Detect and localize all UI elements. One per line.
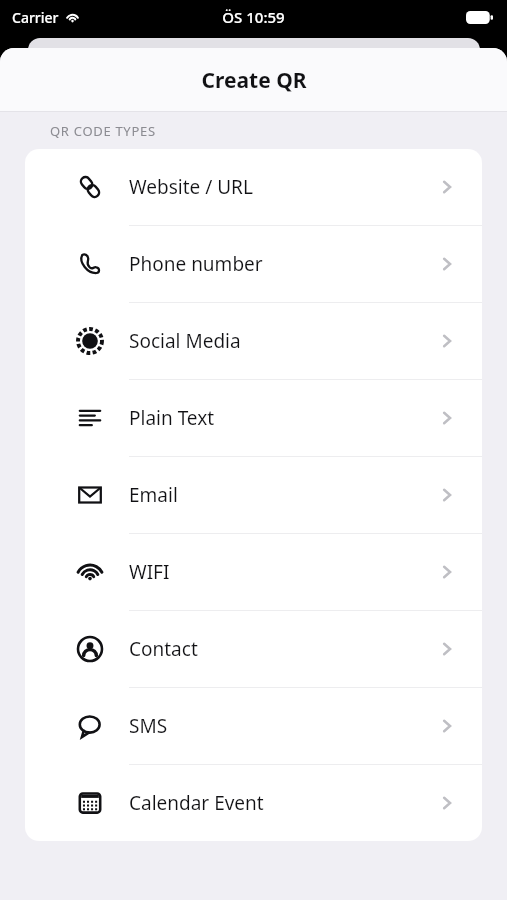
staticText: ÖS 10:59 [222, 7, 285, 27]
staticText: WIFI [129, 559, 438, 585]
button[interactable]: Contact [25, 611, 482, 687]
button[interactable]: SMS [25, 688, 482, 764]
staticText: Contact [129, 636, 438, 662]
staticText: SMS [129, 713, 438, 739]
staticText: Social Media [129, 328, 438, 354]
button[interactable]: Phone number [25, 226, 482, 302]
staticText: QR CODE TYPES [50, 122, 156, 140]
staticText: Phone number [129, 251, 438, 277]
button[interactable]: Social Media [25, 303, 482, 379]
button[interactable]: Email [25, 457, 482, 533]
staticText: Website / URL [129, 174, 438, 200]
staticText: Calendar Event [129, 790, 438, 816]
staticText: Carrier [12, 8, 59, 27]
button[interactable]: Plain Text [25, 380, 482, 456]
button[interactable]: WIFI [25, 534, 482, 610]
staticText: Plain Text [129, 405, 438, 431]
staticText: Email [129, 482, 438, 508]
button[interactable]: Website / URL [25, 149, 482, 225]
staticText: Create QR [201, 66, 307, 95]
button[interactable]: Calendar Event [25, 765, 482, 841]
